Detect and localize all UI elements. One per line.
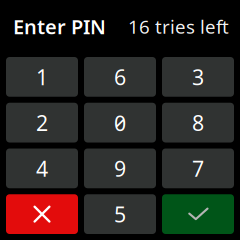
button[interactable]: 3: [162, 57, 234, 97]
staticText: 9: [114, 154, 126, 182]
button[interactable]: 1: [6, 57, 78, 97]
staticText: 7: [192, 154, 204, 182]
button[interactable]: 5: [84, 194, 156, 234]
staticText: 6: [114, 63, 126, 91]
button[interactable]: Confirm: [162, 194, 234, 234]
button[interactable]: Cancel: [6, 194, 78, 234]
staticText: 8: [192, 108, 204, 137]
staticText: 0: [114, 108, 126, 137]
button[interactable]: 7: [162, 148, 234, 188]
staticText: 4: [36, 154, 48, 182]
staticText: 5: [114, 200, 126, 228]
button[interactable]: 2: [6, 103, 78, 143]
staticText: 3: [192, 63, 204, 91]
button[interactable]: 0: [84, 103, 156, 143]
staticText: 16 tries left: [128, 14, 229, 39]
button[interactable]: 9: [84, 148, 156, 188]
staticText: 1: [36, 63, 48, 91]
button[interactable]: 6: [84, 57, 156, 97]
button[interactable]: 4: [6, 148, 78, 188]
staticText: 2: [36, 108, 48, 137]
staticText: Enter PIN: [13, 13, 106, 40]
button[interactable]: 8: [162, 103, 234, 143]
